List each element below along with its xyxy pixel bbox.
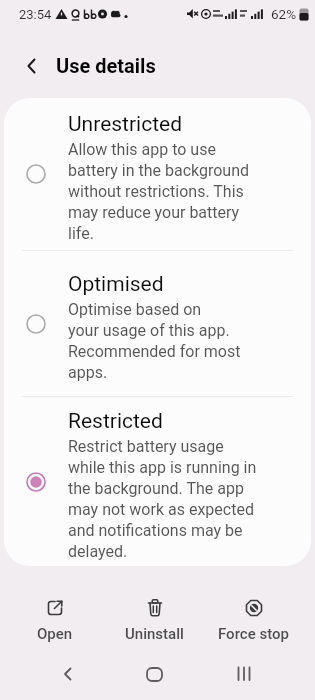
staticText: Restricted — [68, 409, 163, 434]
button[interactable] — [232, 662, 256, 686]
button[interactable]: Force stop — [204, 586, 303, 648]
button[interactable] — [56, 662, 80, 686]
staticText: Uninstall — [125, 625, 184, 643]
button[interactable]: Optimised — [4, 251, 311, 396]
staticText: Restrict battery usage while this app is… — [68, 437, 257, 561]
button[interactable]: Uninstall — [105, 586, 204, 648]
button[interactable]: Unrestricted — [4, 98, 311, 250]
staticText: 23:54 — [19, 7, 52, 22]
button[interactable]: Restricted — [4, 397, 311, 566]
staticText: Optimise based on your usage of this app… — [68, 300, 241, 382]
staticText: Allow this app to use battery in the bac… — [68, 140, 250, 243]
staticText: 62% — [271, 6, 297, 22]
button[interactable] — [142, 662, 166, 686]
staticText: Optimised — [68, 272, 164, 297]
button[interactable]: Open — [5, 586, 105, 648]
staticText: Force stop — [218, 625, 289, 643]
button[interactable] — [20, 54, 44, 78]
staticText: Open — [37, 625, 73, 643]
staticText: Unrestricted — [68, 112, 183, 137]
staticText: Use details — [56, 54, 156, 77]
